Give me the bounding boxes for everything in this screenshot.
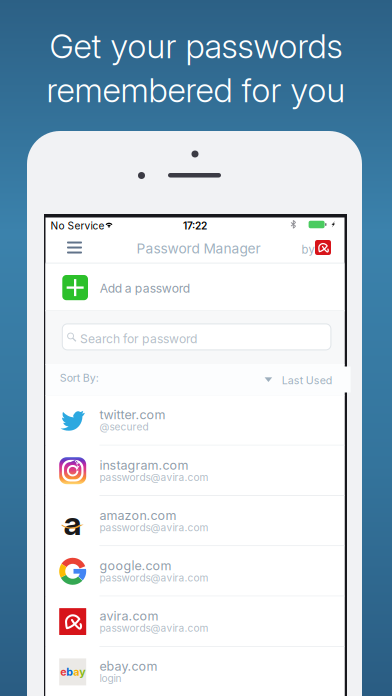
staticText: Password Manager <box>136 240 260 257</box>
staticText: by <box>301 243 314 257</box>
staticText: a <box>73 665 79 678</box>
staticText: passwords@avira.com <box>100 471 209 483</box>
staticText: twitter.com <box>100 407 166 422</box>
staticText: passwords@avira.com <box>100 521 209 534</box>
button[interactable]: Search for password <box>62 324 331 350</box>
button[interactable]: Last Used <box>265 366 351 392</box>
staticText: No Service <box>50 220 104 232</box>
button[interactable]: avira.com <box>45 596 344 647</box>
staticText: ebay.com <box>100 659 158 674</box>
staticText: amazon.com <box>100 508 177 523</box>
staticText: instagram.com <box>100 457 189 473</box>
button[interactable]: e <box>45 647 344 696</box>
staticText: Get your passwords <box>49 26 342 66</box>
button[interactable]: instagram.com <box>45 445 344 496</box>
staticText: y <box>79 665 85 678</box>
staticText: google.com <box>100 558 172 573</box>
button[interactable]: Avira <box>301 231 338 263</box>
staticText: b <box>66 665 73 678</box>
staticText: Search for password <box>80 331 197 346</box>
button[interactable]: Add a password <box>45 264 344 311</box>
staticText: login <box>100 672 122 685</box>
staticText: Last Used <box>282 374 333 387</box>
staticText: passwords@avira.com <box>100 622 209 634</box>
button[interactable]: a <box>45 496 344 546</box>
button[interactable]: twitter.com <box>45 395 344 445</box>
staticText: passwords@avira.com <box>100 572 209 584</box>
staticText: Add a password <box>100 281 190 296</box>
staticText: e <box>60 665 66 678</box>
staticText: remembered for you <box>46 70 345 110</box>
button[interactable]: Menu <box>57 231 91 263</box>
button[interactable]: google.com <box>45 546 344 596</box>
staticText: 17:22 <box>183 220 207 232</box>
staticText: @secured <box>100 421 149 433</box>
staticText: Sort By: <box>60 371 99 384</box>
staticText: avira.com <box>100 608 159 624</box>
staticText: a <box>64 504 82 543</box>
